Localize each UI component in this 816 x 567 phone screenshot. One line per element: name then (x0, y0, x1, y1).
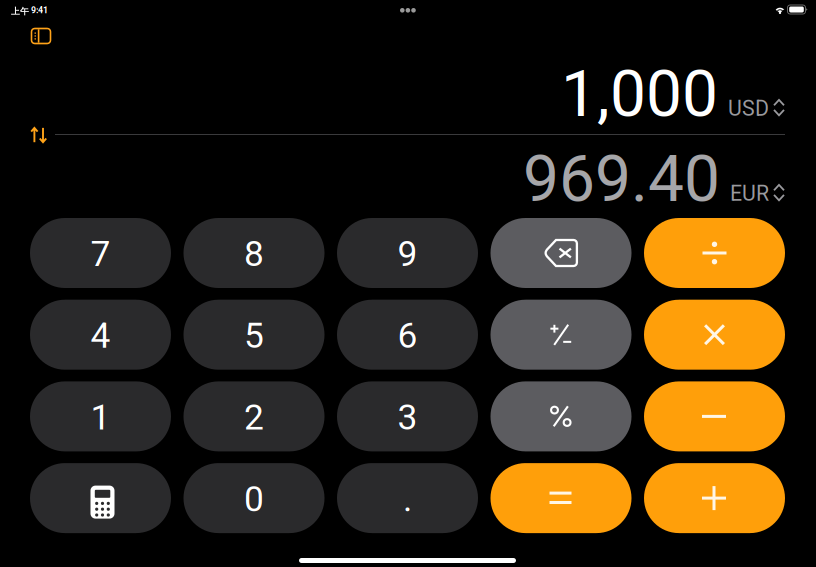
button[interactable]: 5 (183, 300, 324, 370)
staticText: 1 (90, 392, 110, 444)
button[interactable]: Percent (490, 381, 631, 451)
button[interactable]: Divide (644, 218, 785, 288)
staticText: 9 (397, 229, 417, 281)
button[interactable]: 3 (337, 381, 478, 451)
button[interactable]: 8 (183, 218, 324, 288)
button[interactable]: Swap currencies (22, 120, 56, 150)
button[interactable]: Delete (490, 218, 631, 288)
button[interactable]: Equals (490, 463, 631, 533)
staticText: 7 (90, 229, 110, 281)
staticText: 8 (244, 229, 264, 281)
button[interactable]: 2 (183, 381, 324, 451)
button[interactable]: 7 (30, 218, 171, 288)
staticText: 969.40 (523, 134, 720, 228)
staticText: EUR (730, 178, 769, 210)
staticText: USD (728, 93, 769, 125)
button[interactable]: 969.40 (30, 148, 785, 214)
button[interactable]: 4 (30, 300, 171, 370)
button[interactable]: Calculator (30, 463, 171, 533)
button[interactable]: Plus minus (490, 300, 631, 370)
button[interactable]: Plus (644, 463, 785, 533)
button[interactable]: Show sidebar (21, 20, 61, 52)
staticText: 2 (244, 392, 264, 444)
button[interactable]: 1 (30, 381, 171, 451)
staticText: 1,000 (561, 49, 718, 143)
button[interactable]: Minus (644, 381, 785, 451)
button[interactable]: . (337, 463, 478, 533)
staticText: 3 (397, 392, 417, 444)
staticText: 4 (90, 311, 110, 363)
button[interactable]: 1,000 (30, 63, 785, 129)
staticText: 上午 9:41 (11, 4, 48, 17)
staticText: 5 (244, 311, 264, 363)
button[interactable]: 0 (183, 463, 324, 533)
button[interactable]: 9 (337, 218, 478, 288)
staticText: 0 (244, 474, 264, 526)
staticText: 6 (397, 311, 417, 363)
button[interactable]: Multiply (644, 300, 785, 370)
button[interactable]: 6 (337, 300, 478, 370)
staticText: . (403, 474, 412, 526)
